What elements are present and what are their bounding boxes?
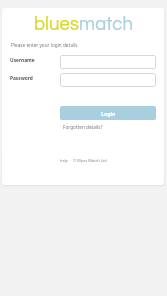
staticText: blues: [34, 15, 79, 34]
staticText: Password: [10, 75, 33, 82]
staticText: Please enter your login details: [11, 42, 78, 48]
button[interactable]: Forgotten details?: [63, 124, 103, 130]
button[interactable]: Login: [60, 106, 156, 120]
staticText: Username: [10, 57, 35, 64]
staticText: help · © Blues Match Ltd: [60, 158, 107, 163]
button[interactable]: Username input: [60, 55, 156, 69]
staticText: match: [79, 15, 133, 34]
staticText: Login: [101, 110, 116, 117]
button[interactable]: Password input: [60, 73, 156, 87]
